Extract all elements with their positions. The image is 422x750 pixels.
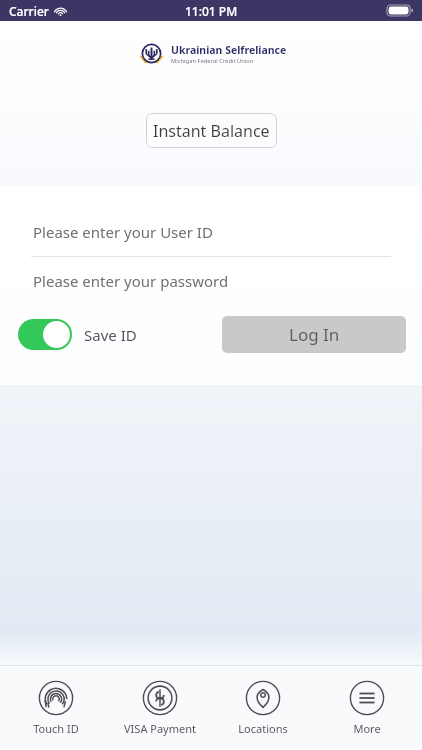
button[interactable]: Please enter your password — [0, 257, 422, 305]
staticText: Log In — [289, 323, 340, 346]
button[interactable]: Locations — [215, 676, 310, 740]
button[interactable]: Touch ID — [8, 676, 103, 740]
button[interactable]: Log In — [222, 316, 406, 353]
staticText: Please enter your password — [33, 271, 229, 291]
staticText: Instant Balance — [153, 120, 270, 142]
button[interactable]: VISA Payment — [112, 676, 207, 740]
button[interactable]: Save ID toggle — [18, 319, 72, 350]
staticText: Locations — [238, 721, 288, 736]
staticText: Ukrainian Selfreliance — [171, 43, 287, 57]
staticText: Michigan Federal Credit Union — [171, 57, 254, 65]
button[interactable]: Please enter your User ID — [0, 208, 422, 257]
button[interactable]: Instant Balance — [146, 113, 277, 148]
button[interactable]: More — [319, 676, 414, 740]
staticText: Save ID — [84, 325, 137, 345]
staticText: VISA Payment — [124, 721, 196, 736]
staticText: Touch ID — [33, 721, 79, 736]
staticText: 11:01 PM — [185, 3, 238, 19]
staticText: More — [353, 721, 381, 736]
staticText: Please enter your User ID — [33, 222, 213, 242]
staticText: Carrier — [9, 3, 49, 19]
